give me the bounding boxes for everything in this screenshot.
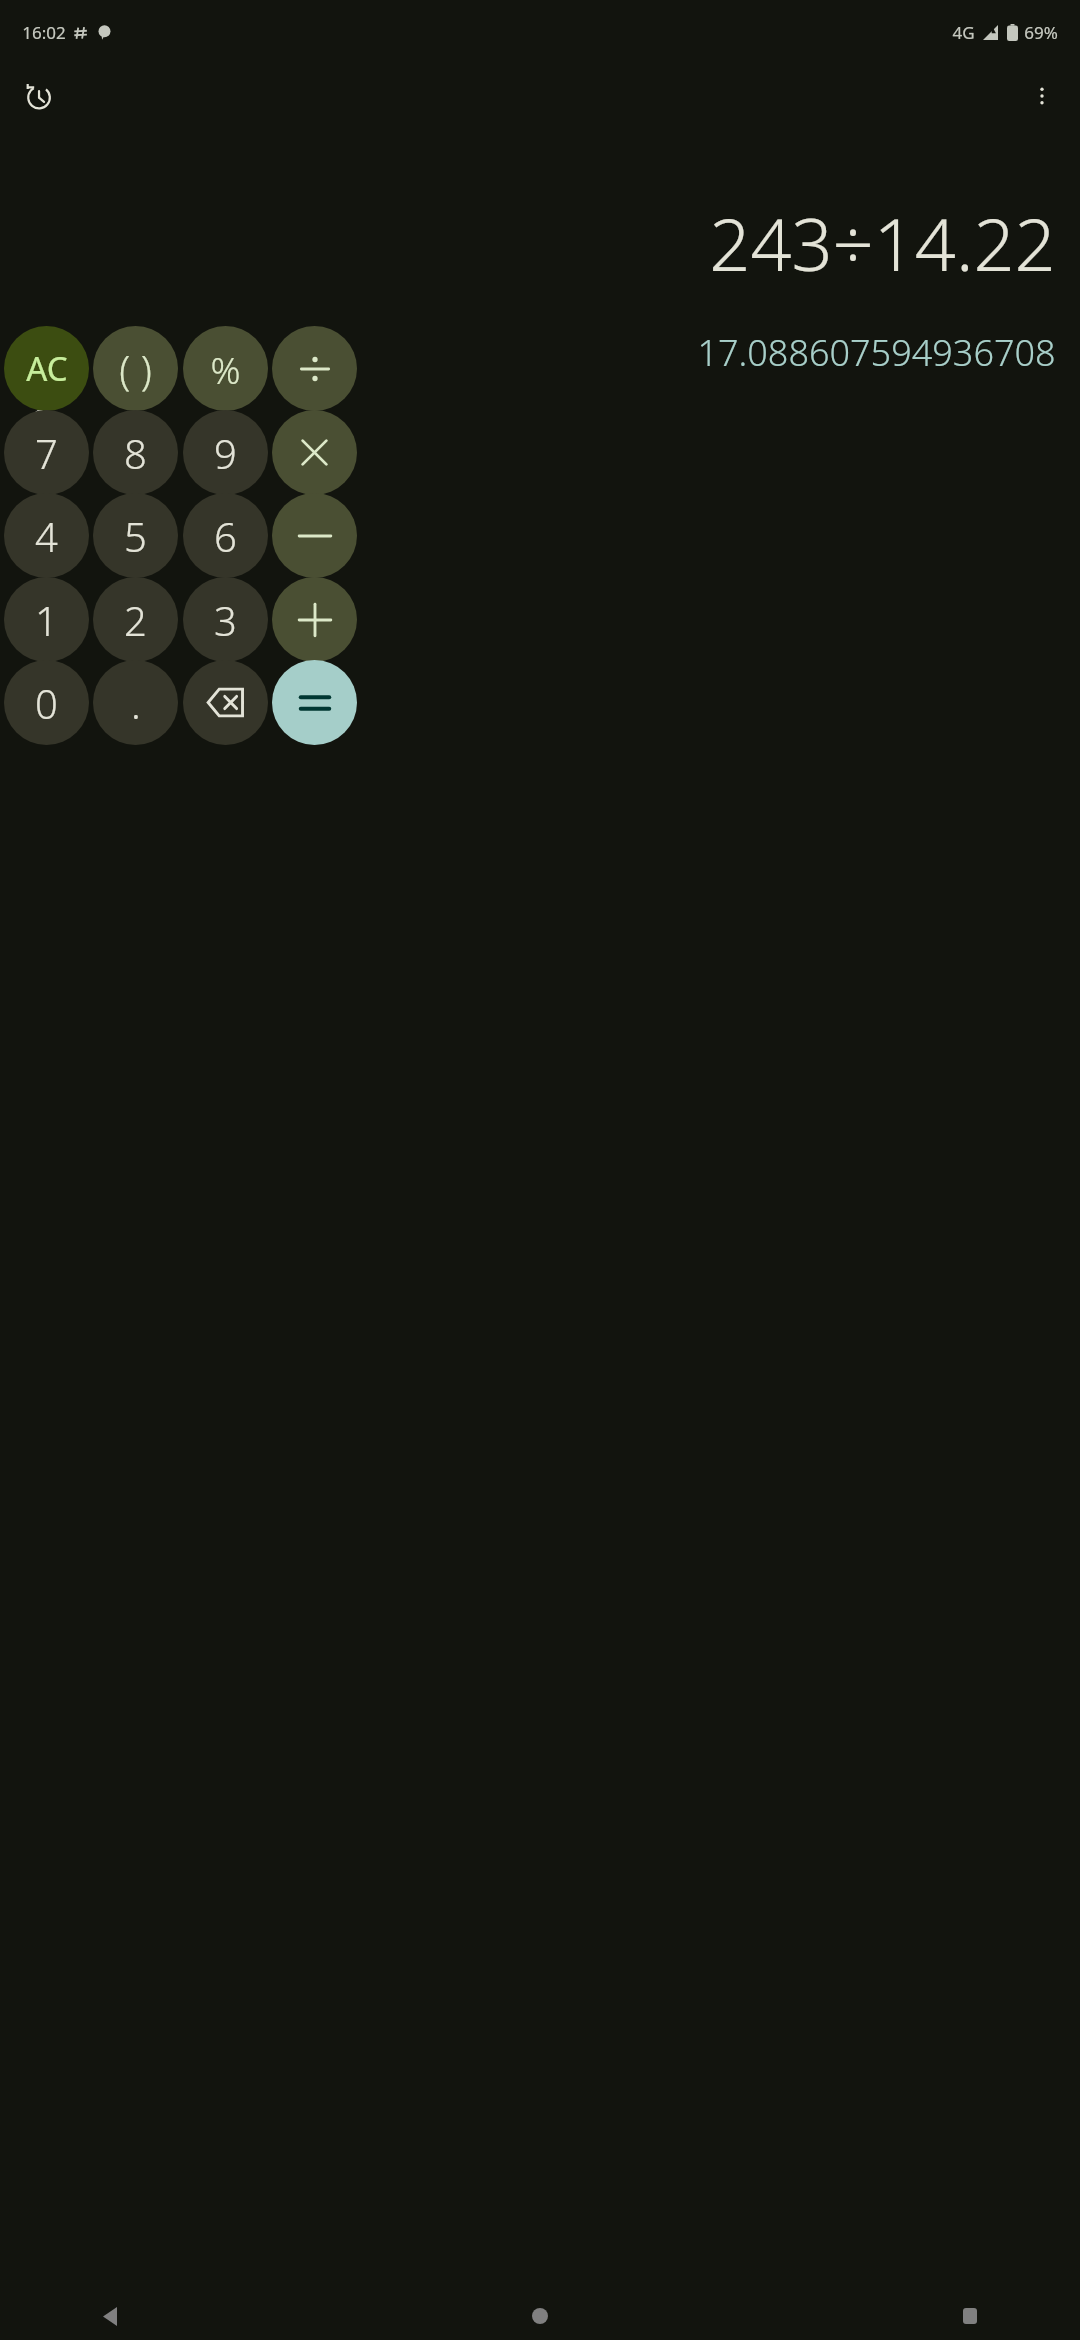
staticText: 8 — [124, 426, 147, 480]
button[interactable]: AC — [4, 326, 89, 411]
button[interactable]: 8 — [93, 410, 178, 495]
button[interactable]: More options — [1018, 72, 1066, 120]
staticText: 1 — [35, 593, 58, 647]
staticText: 17.088607594936708 — [697, 328, 1056, 377]
button[interactable]: 2 — [93, 577, 178, 662]
staticText: 5 — [124, 509, 147, 563]
staticText: 6 — [214, 509, 237, 563]
button[interactable]: Recent apps — [946, 2292, 994, 2340]
staticText: 0 — [35, 676, 58, 730]
button[interactable]: Multiply — [272, 410, 357, 495]
button[interactable]: Equals — [272, 660, 357, 745]
button[interactable]: Plus — [272, 577, 357, 662]
staticText: 7 — [35, 426, 58, 480]
staticText: 3 — [214, 593, 237, 647]
button[interactable]: 6 — [183, 493, 268, 578]
button[interactable]: % — [183, 326, 268, 411]
staticText: 9 — [214, 426, 237, 480]
button[interactable]: . — [93, 660, 178, 745]
button[interactable]: 9 — [183, 410, 268, 495]
staticText: 4 — [35, 509, 58, 563]
staticText: . — [131, 676, 141, 730]
staticText: 69% — [1024, 21, 1058, 44]
button[interactable]: Back — [86, 2292, 134, 2340]
button[interactable]: Minus — [272, 493, 357, 578]
staticText: 4G — [952, 21, 975, 44]
staticText: 16:02 — [22, 21, 66, 44]
button[interactable]: 3 — [183, 577, 268, 662]
button[interactable]: 4 — [4, 493, 89, 578]
button[interactable]: Expand display — [14, 399, 66, 443]
button[interactable]: 0 — [4, 660, 89, 745]
staticText: 2 — [124, 593, 147, 647]
button[interactable]: 7 — [4, 410, 89, 495]
staticText: 243÷14.22 — [709, 194, 1056, 292]
staticText: AC — [26, 346, 68, 391]
button[interactable]: Delete — [183, 660, 268, 745]
button[interactable]: 5 — [93, 493, 178, 578]
button[interactable]: Home — [516, 2292, 564, 2340]
button[interactable]: History — [14, 72, 62, 120]
button[interactable]: ( ) — [93, 326, 178, 411]
button[interactable]: Divide — [272, 326, 357, 411]
staticText: % — [210, 344, 241, 394]
button[interactable]: 1 — [4, 577, 89, 662]
staticText: ( ) — [119, 342, 152, 396]
